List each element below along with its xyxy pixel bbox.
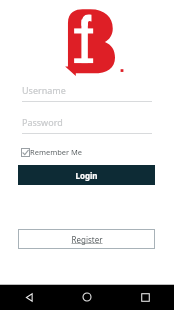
button[interactable]: Login <box>18 165 155 185</box>
button[interactable]: Password <box>22 116 152 134</box>
button[interactable]: Username <box>22 84 152 102</box>
button[interactable]: Back <box>0 284 58 310</box>
button[interactable]: Remember Me <box>21 147 83 157</box>
button[interactable]: Recent apps <box>116 284 174 310</box>
staticText: Remember Me <box>30 147 83 157</box>
staticText: Username <box>22 84 66 96</box>
staticText: Login <box>75 170 98 181</box>
button[interactable]: Register <box>18 229 155 249</box>
staticText: Register <box>71 234 103 245</box>
staticText: Password <box>22 116 63 128</box>
button[interactable]: Home <box>58 284 116 310</box>
